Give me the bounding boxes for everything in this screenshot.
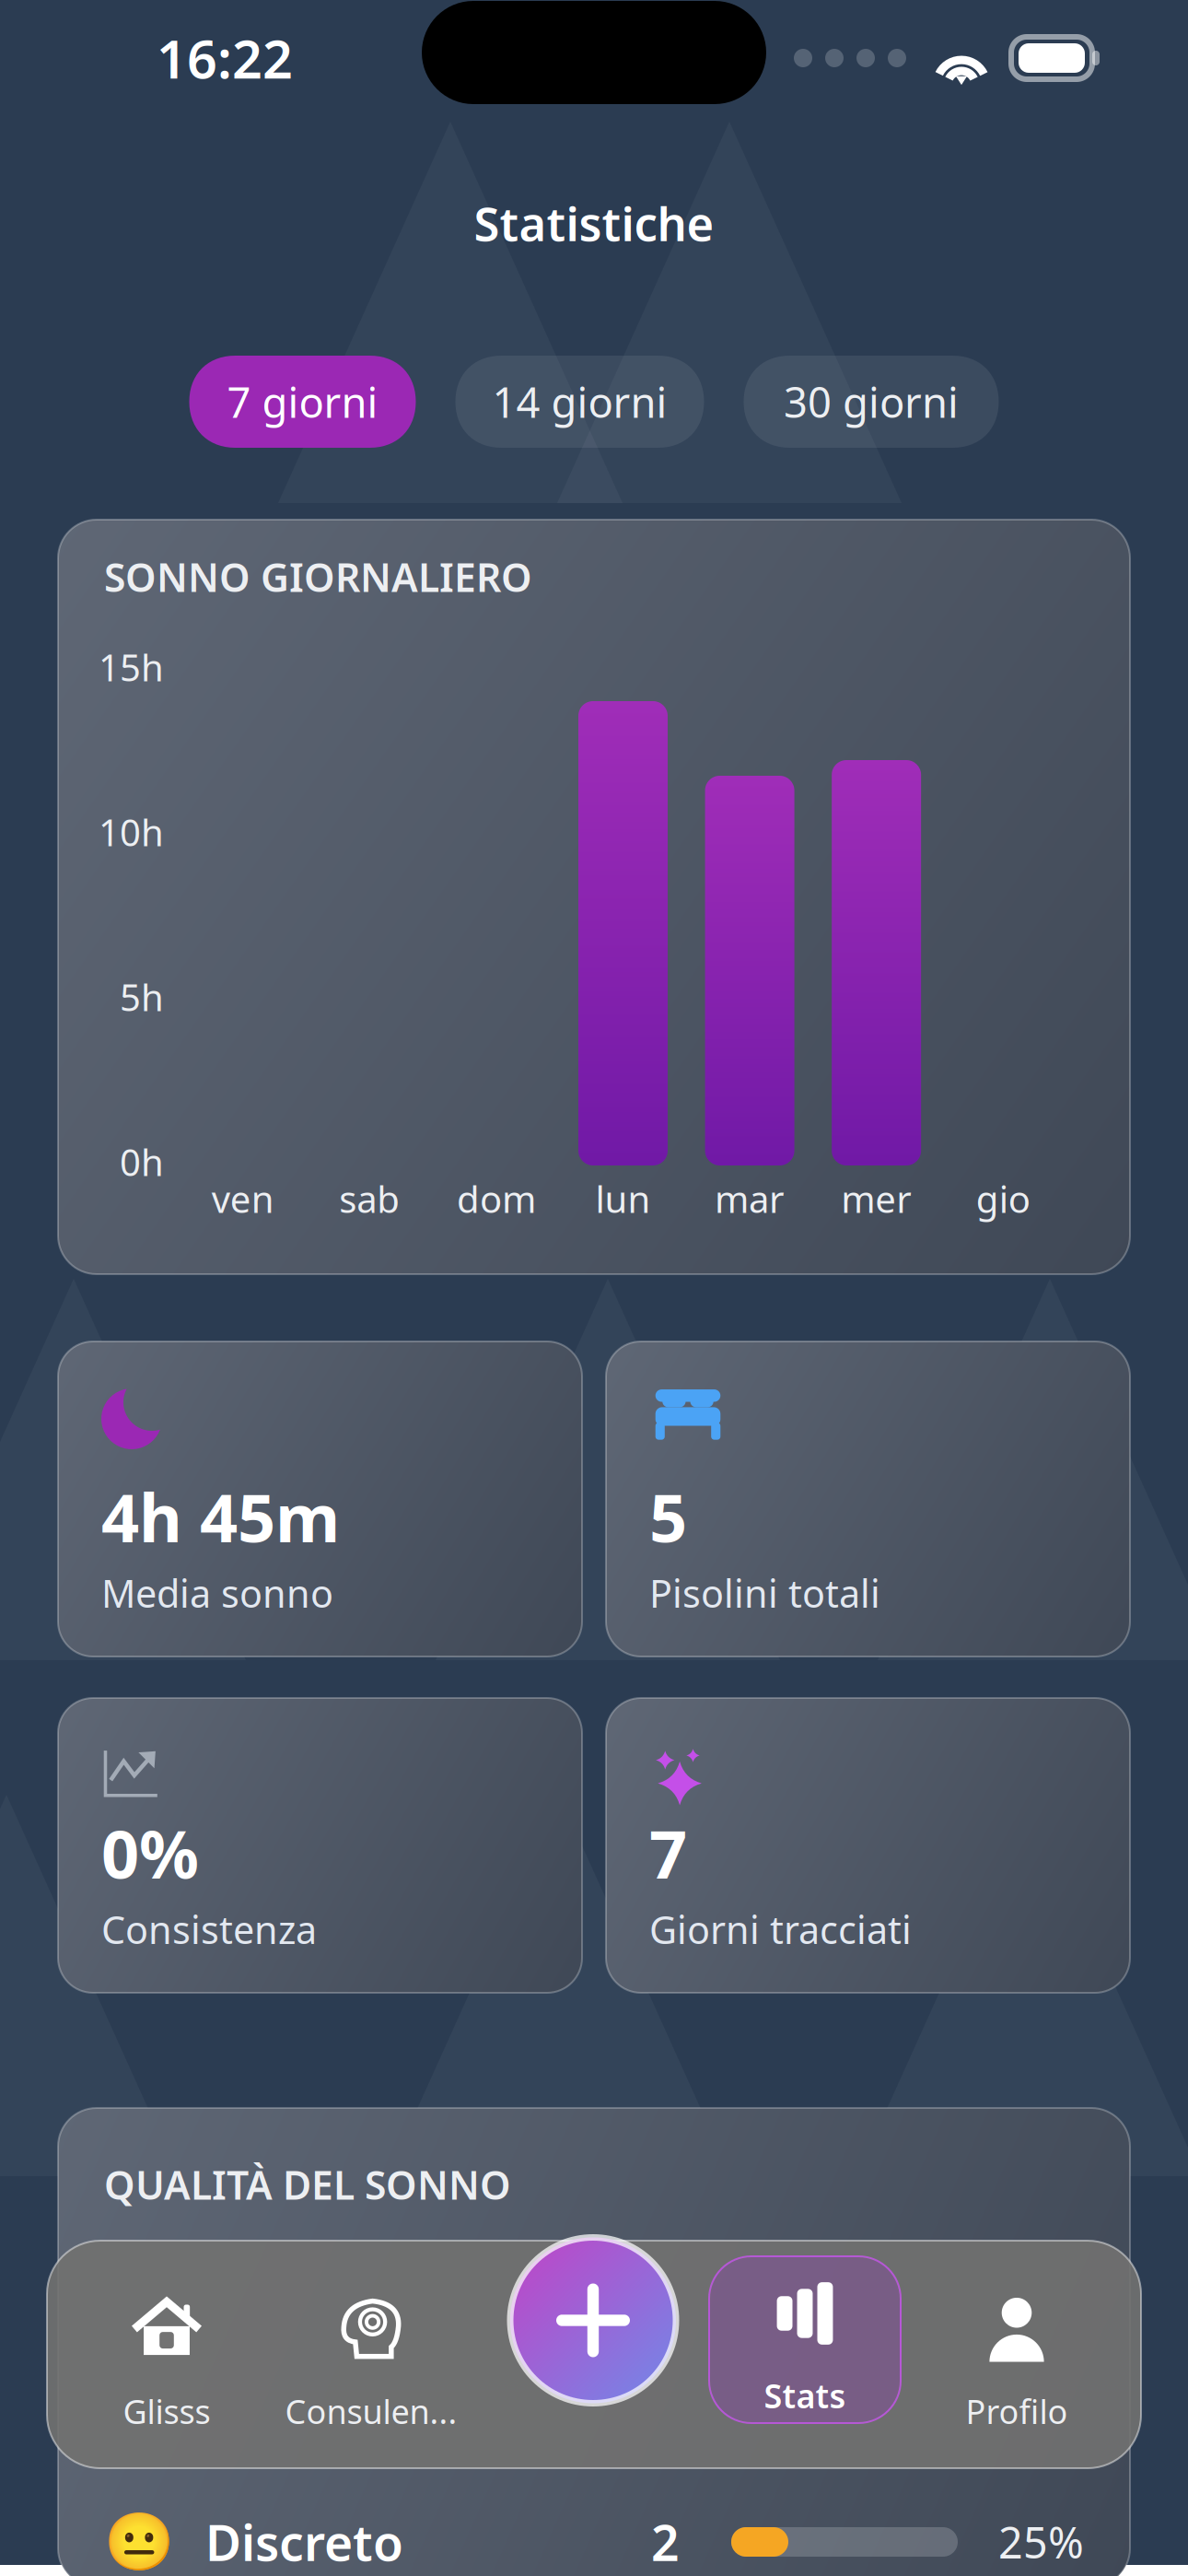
button[interactable]: Stats — [695, 2225, 914, 2484]
staticText: mer — [841, 1174, 912, 1223]
button[interactable]: 30 giorni — [744, 356, 999, 448]
staticText: Giorni tracciati — [649, 1904, 912, 1955]
staticText: 14 giorni — [492, 374, 667, 429]
staticText: 2 — [651, 2509, 680, 2575]
button[interactable]: 7 giorni — [189, 356, 416, 448]
button[interactable]: 14 giorni — [455, 356, 704, 448]
staticText: Glisss — [123, 2389, 210, 2433]
staticText: 5 — [649, 1472, 687, 1561]
button[interactable]: Aggiungi — [507, 2235, 679, 2406]
staticText: Statistiche — [474, 192, 714, 254]
staticText: 0% — [101, 1809, 199, 1897]
staticText: Consistenza — [101, 1904, 317, 1955]
staticText: Discreto — [205, 2509, 403, 2575]
staticText: Pisolini totali — [649, 1568, 880, 1618]
staticText: 5h — [120, 972, 164, 1021]
staticText: 7 — [649, 1809, 687, 1897]
staticText: dom — [457, 1174, 536, 1223]
staticText: Consulen... — [285, 2389, 457, 2433]
staticText: 4h 45m — [101, 1472, 340, 1561]
staticText: Stats — [764, 2373, 846, 2417]
staticText: 15h — [99, 643, 164, 691]
button[interactable]: Profilo — [907, 2241, 1126, 2468]
staticText: 10h — [99, 807, 164, 856]
button[interactable]: Consulen... — [262, 2241, 481, 2468]
staticText: SONNO GIORNALIERO — [104, 551, 532, 603]
staticText: QUALITÀ DEL SONNO — [104, 2158, 511, 2211]
button[interactable]: Glisss — [57, 2241, 276, 2468]
staticText: 😐 — [104, 2510, 174, 2574]
staticText: sab — [339, 1174, 400, 1223]
staticText: 0h — [120, 1137, 164, 1186]
staticText: Profilo — [966, 2389, 1068, 2433]
staticText: mar — [715, 1174, 785, 1223]
staticText: 16:22 — [157, 23, 293, 93]
staticText: Media sonno — [101, 1568, 333, 1618]
staticText: lun — [595, 1174, 651, 1223]
staticText: 25% — [998, 2513, 1084, 2570]
staticText: 30 giorni — [784, 374, 959, 429]
staticText: 7 giorni — [227, 374, 378, 429]
staticText: gio — [976, 1174, 1030, 1223]
staticText: ven — [212, 1174, 274, 1223]
